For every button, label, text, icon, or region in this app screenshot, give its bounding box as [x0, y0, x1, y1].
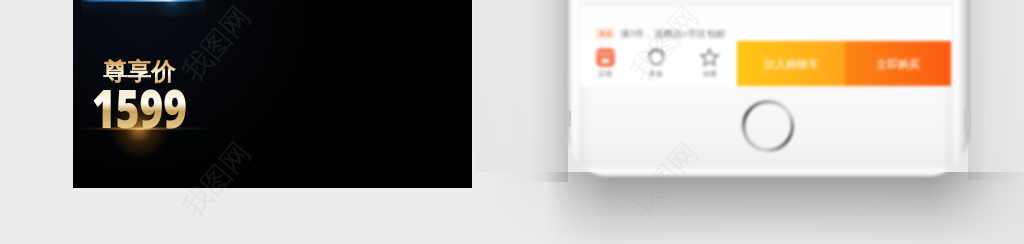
- staticText: 立即购买: [876, 57, 920, 71]
- staticText: 满减: [598, 29, 612, 38]
- staticText: 我图网: [175, 0, 259, 89]
- staticText: 我图网: [623, 135, 707, 225]
- staticText: 客服: [649, 69, 663, 78]
- staticText: 满1件，送赠品+市区包邮: [620, 27, 726, 40]
- staticText: 我图网: [175, 135, 259, 225]
- button[interactable]: 收藏: [682, 41, 737, 86]
- staticText: 加入购物车: [764, 57, 819, 71]
- button[interactable]: 加入购物车: [737, 41, 845, 86]
- staticText: 收藏: [703, 69, 717, 78]
- staticText: 我图网: [623, 0, 707, 89]
- other: Home: [742, 100, 794, 152]
- button[interactable]: 店铺: [580, 41, 630, 86]
- staticText: 尊享价: [103, 57, 175, 87]
- button[interactable]: 立即购买: [845, 41, 951, 86]
- staticText: 店铺: [598, 69, 612, 78]
- button[interactable]: 客服: [630, 41, 682, 86]
- staticText: 1599: [92, 71, 188, 143]
